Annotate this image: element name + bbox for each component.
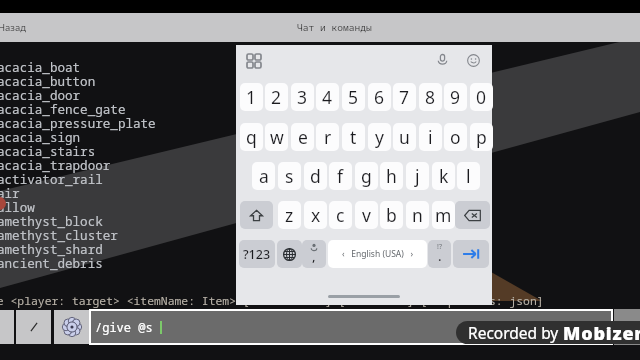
button[interactable]: Send [614,309,640,345]
staticText: p [476,125,487,149]
button[interactable]: c [329,201,352,229]
button[interactable]: Voice input [435,53,450,68]
button[interactable]: h [380,162,403,190]
button[interactable]: Period [428,240,451,268]
staticText: v [362,203,371,227]
staticText: 0 [476,85,487,109]
button[interactable]: w [265,123,288,151]
staticText: j [415,164,420,188]
button[interactable]: Change language [277,240,302,268]
button[interactable]: o [444,123,467,151]
staticText: 9 [450,85,461,109]
staticText: e [298,125,308,149]
button[interactable]: 3 [291,83,314,111]
button[interactable]: ?123 [239,240,275,268]
button[interactable]: 5 [342,83,365,111]
staticText: , [312,247,316,265]
button[interactable]: u [393,123,416,151]
button[interactable]: f [329,162,352,190]
button[interactable]: v [355,201,378,229]
staticText: s [285,164,294,188]
button[interactable]: g [355,162,378,190]
staticText: Назад [0,21,27,34]
staticText: 1 [246,85,257,109]
button[interactable]: 0 [470,83,493,111]
staticText: x [311,203,321,227]
staticText: ‹ English (USA) › [342,248,414,260]
button[interactable]: Backspace [455,201,490,229]
button[interactable]: a [252,162,275,190]
staticText: h [386,164,397,188]
staticText: k [439,164,449,188]
button[interactable]: t [342,123,365,151]
button[interactable]: b [380,201,403,229]
button[interactable]: s [278,162,301,190]
staticText: w [270,125,284,149]
staticText: !? [437,242,442,252]
button[interactable]: m [432,201,455,229]
staticText: . [438,247,442,265]
button[interactable]: ‹ English (USA) › [328,240,427,268]
staticText: 5 [348,85,359,109]
button[interactable]: /give @s [91,311,611,343]
staticText: f [337,164,344,188]
staticText: l [466,164,471,188]
button[interactable]: y [368,123,391,151]
button[interactable]: Назад [0,21,27,34]
staticText: amethyst_block [0,213,103,230]
button[interactable]: 9 [444,83,467,111]
staticText: i [428,125,433,149]
button[interactable]: z [278,201,301,229]
staticText: z [285,203,294,227]
staticText: acacia_boat [0,59,81,76]
staticText: acacia_stairs [0,143,96,160]
staticText: amethyst_cluster [0,227,118,244]
button[interactable]: 6 [368,83,391,111]
button[interactable]: r [316,123,339,151]
button[interactable]: 2 [265,83,288,111]
button[interactable]: p [470,123,493,151]
button[interactable]: Slash key [16,310,51,344]
staticText: 3 [297,85,308,109]
staticText: acacia_trapdoor [0,157,111,174]
button[interactable]: n [406,201,429,229]
staticText: 7 [399,85,410,109]
staticText: 4 [322,85,333,109]
staticText: t [350,125,357,149]
staticText: amethyst_shard [0,241,103,258]
button[interactable]: q [240,123,263,151]
staticText: activator_rail [0,171,103,188]
button[interactable]: j [406,162,429,190]
staticText: y [375,125,384,149]
staticText: air [0,185,20,202]
button[interactable]: Enter [453,240,489,268]
button[interactable]: Keyboard modes [247,54,261,68]
button[interactable]: l [457,162,480,190]
button[interactable]: Shift [240,201,273,229]
button[interactable]: x [304,201,327,229]
staticText: 8 [425,85,436,109]
staticText: g [361,164,372,188]
staticText: acacia_door [0,87,81,104]
button[interactable]: 8 [419,83,442,111]
staticText: 6 [374,85,385,109]
staticText: /give @s [95,319,160,335]
button[interactable]: Emoji [467,54,480,67]
staticText: u [399,125,410,149]
button[interactable]: d [304,162,327,190]
staticText: ?123 [243,246,271,263]
button[interactable]: 4 [316,83,339,111]
staticText: 2 [271,85,282,109]
button[interactable]: k [432,162,455,190]
button[interactable]: 1 [240,83,263,111]
button[interactable]: Emoji picker [54,310,89,344]
staticText: b [386,203,397,227]
staticText: acacia_button [0,73,96,90]
button[interactable]: e [291,123,314,151]
staticText: acacia_pressure_plate [0,115,156,132]
button[interactable]: Comma [302,240,326,268]
button[interactable]: 7 [393,83,416,111]
staticText: allow [0,199,35,216]
button[interactable]: i [419,123,442,151]
